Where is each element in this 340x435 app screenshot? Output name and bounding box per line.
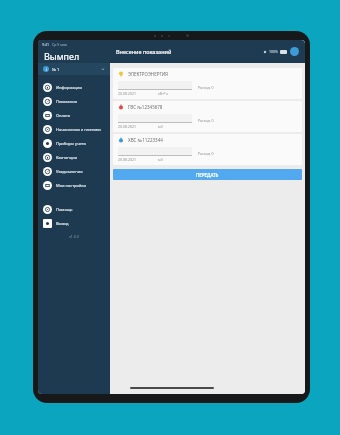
staticText: Расход: 0 bbox=[198, 151, 214, 156]
button[interactable]: Мои настройки bbox=[38, 178, 110, 192]
staticText: кВт*ч bbox=[158, 91, 168, 96]
button[interactable]: Начисления и платежи bbox=[38, 122, 110, 136]
staticText: 20.08.2021 bbox=[118, 124, 136, 129]
button[interactable]: Помощь bbox=[38, 202, 110, 216]
staticText: Приборы учета bbox=[56, 141, 86, 146]
button[interactable]: Показания bbox=[38, 94, 110, 108]
button[interactable]: ГВС №12345678 bbox=[113, 101, 302, 132]
button[interactable]: Приборы учета bbox=[38, 136, 110, 150]
button[interactable]: Квитанции bbox=[38, 150, 110, 164]
staticText: v1.0.0 bbox=[69, 234, 79, 239]
staticText: 9:41 bbox=[42, 42, 49, 47]
staticText: ХВС №11223344 bbox=[128, 137, 163, 143]
staticText: ПЕРЕДАТЬ bbox=[196, 172, 219, 178]
staticText: Расход: 0 bbox=[198, 118, 214, 123]
staticText: Уведомления bbox=[56, 169, 83, 174]
button[interactable] bbox=[118, 114, 192, 123]
button[interactable]: Уведомления bbox=[38, 164, 110, 178]
staticText: 20.08.2021 bbox=[118, 157, 136, 162]
staticText: Внесение показаний bbox=[116, 48, 172, 55]
staticText: Мои настройки bbox=[56, 183, 86, 188]
staticText: Ср 5 мая bbox=[52, 42, 67, 47]
staticText: м3 bbox=[158, 157, 163, 162]
staticText: 20.08.2021 bbox=[118, 91, 136, 96]
staticText: Помощь bbox=[56, 207, 73, 212]
staticText: ЭЛЕКТРОЭНЕРГИЯ bbox=[128, 71, 168, 77]
button[interactable]: Оплата bbox=[38, 108, 110, 122]
button[interactable]: i bbox=[38, 63, 110, 75]
button[interactable]: Выход bbox=[38, 216, 110, 230]
button[interactable]: Информация bbox=[38, 80, 110, 94]
staticText: Квитанции bbox=[56, 155, 78, 160]
staticText: i bbox=[46, 67, 47, 72]
staticText: Показания bbox=[56, 99, 77, 104]
button[interactable]: ЭЛЕКТРОЭНЕРГИЯ bbox=[113, 68, 302, 99]
staticText: Расход: 0 bbox=[198, 85, 214, 90]
staticText: Начисления и платежи bbox=[56, 127, 101, 132]
button[interactable] bbox=[118, 147, 192, 156]
button[interactable]: ХВС №11223344 bbox=[113, 134, 302, 165]
button[interactable] bbox=[118, 81, 192, 90]
staticText: м3 bbox=[158, 124, 163, 129]
staticText: № 1 bbox=[52, 67, 60, 72]
staticText: 100% bbox=[269, 49, 278, 54]
button[interactable]: Профиль bbox=[290, 47, 299, 56]
staticText: Оплата bbox=[56, 113, 71, 118]
staticText: ГВС №12345678 bbox=[128, 104, 163, 110]
staticText: Вымпел bbox=[44, 50, 80, 62]
button[interactable]: ПЕРЕДАТЬ bbox=[113, 169, 302, 180]
staticText: Информация bbox=[56, 85, 82, 90]
staticText: Выход bbox=[56, 221, 69, 226]
